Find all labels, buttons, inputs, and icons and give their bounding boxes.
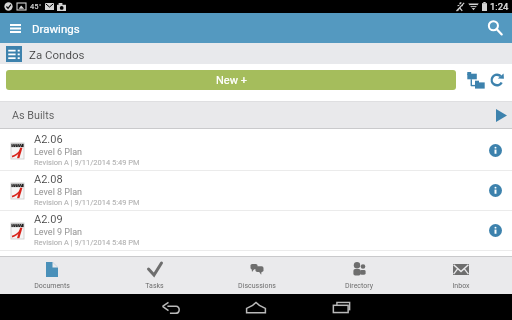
button[interactable]: New + xyxy=(6,70,456,90)
button[interactable]: Folder tree xyxy=(465,70,486,90)
button[interactable]: A2.09 xyxy=(0,211,512,250)
button[interactable]: Info xyxy=(485,140,505,160)
staticText: New + xyxy=(216,74,247,87)
button[interactable]: Inbox xyxy=(410,257,512,294)
button[interactable]: Search xyxy=(482,15,508,41)
staticText: Directory xyxy=(345,282,373,290)
staticText: Revision A | 9/11/2014 5:49 PM xyxy=(34,158,140,167)
button[interactable]: Za Condos xyxy=(0,43,512,64)
button[interactable]: A2.06 xyxy=(0,131,512,170)
staticText: Drawings xyxy=(32,22,80,35)
staticText: Discussions xyxy=(238,282,276,290)
staticText: A2.08 xyxy=(34,173,63,186)
button[interactable]: Directory xyxy=(308,257,410,294)
button[interactable]: Tasks xyxy=(103,257,206,294)
staticText: Za Condos xyxy=(29,48,85,61)
staticText: A2.06 xyxy=(34,133,63,146)
staticText: Level 8 Plan xyxy=(34,187,83,198)
staticText: Level 9 Plan xyxy=(34,227,83,238)
staticText: ° xyxy=(39,2,42,9)
staticText: Inbox xyxy=(452,282,470,290)
button[interactable]: Discussions xyxy=(206,257,308,294)
button[interactable]: Info xyxy=(485,180,505,200)
staticText: Revision A | 9/11/2014 5:49 PM xyxy=(34,198,140,207)
staticText: Level 6 Plan xyxy=(34,147,83,158)
staticText: 1:24 xyxy=(490,1,509,12)
button[interactable]: Documents xyxy=(0,257,103,294)
button[interactable]: Back xyxy=(151,294,191,320)
button[interactable]: A2.08 xyxy=(0,171,512,210)
staticText: Revision A | 9/11/2014 5:48 PM xyxy=(34,238,140,247)
button[interactable]: Home xyxy=(236,294,276,320)
button[interactable]: Info xyxy=(485,220,505,240)
staticText: A2.09 xyxy=(34,213,63,226)
button[interactable]: Open navigation drawer xyxy=(2,15,28,41)
staticText: Tasks xyxy=(145,282,164,290)
button[interactable]: As Builts xyxy=(0,101,512,129)
button[interactable]: Recent apps xyxy=(321,294,361,320)
staticText: 45 xyxy=(30,2,39,11)
button[interactable]: Refresh xyxy=(487,70,507,90)
staticText: As Builts xyxy=(12,109,55,122)
staticText: Documents xyxy=(34,282,70,290)
